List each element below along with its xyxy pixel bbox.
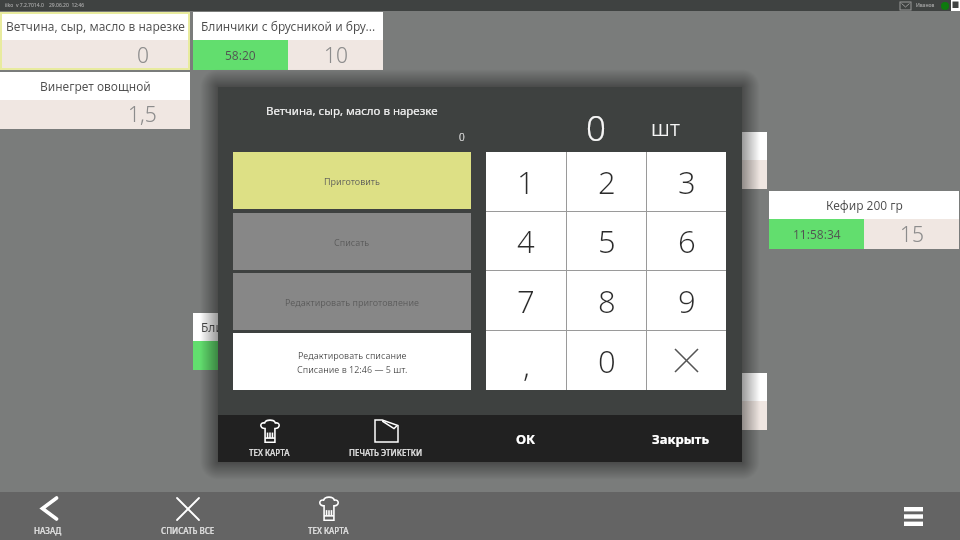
button[interactable]: Редактировать списание (233, 333, 471, 390)
staticText: Блинчики с брусникой и бру... (201, 319, 376, 335)
button[interactable]: СПИСАТЬ ВСЕ (161, 497, 215, 536)
staticText: iiko v 7.2.7014.0 29.06.20 12:46 (5, 2, 85, 9)
button[interactable]: ПЕЧАТЬ ЭТИКЕТКИ (349, 419, 423, 458)
staticText: 7 (517, 280, 535, 322)
button[interactable]: 6 (647, 212, 726, 270)
button[interactable]: 2 (567, 152, 646, 211)
staticText: Иванов (916, 2, 935, 9)
button[interactable]: Закрыть (642, 422, 720, 456)
button[interactable]: Блинчики с брусникой и бру... (193, 12, 383, 70)
button[interactable]: Винегрет овощной (0, 72, 190, 129)
button[interactable]: 4 (486, 212, 566, 270)
button[interactable]: 0 (567, 331, 646, 390)
button[interactable]: ТЕХ КАРТА (308, 496, 349, 536)
button[interactable]: ОК (506, 422, 546, 456)
button[interactable]: Блинчики с брусникой и бру... (193, 313, 383, 370)
staticText: Ветчина, сыр, масло в нарезке (266, 103, 438, 119)
staticText: ПЕЧАТЬ ЭТИКЕТКИ (349, 447, 423, 458)
staticText: 9 (678, 280, 696, 322)
button[interactable]: Стереть (647, 331, 726, 390)
button[interactable]: Меню (893, 496, 933, 536)
staticText: Списание в 12:46 — 5 шт. (297, 363, 408, 375)
button[interactable]: Ветчина, сыр, масло в нарезке (0, 12, 190, 70)
staticText: 58:20 (225, 47, 256, 63)
button[interactable]: 8 (567, 271, 646, 330)
other: Терминал (951, 0, 960, 11)
staticText: ТЕХ КАРТА (308, 525, 349, 536)
staticText: 0 (586, 104, 606, 152)
staticText: 11:58:34 (793, 226, 841, 242)
staticText: , (523, 344, 530, 386)
button[interactable]: Кефир 200 гр (769, 191, 959, 249)
button[interactable]: 3 (647, 152, 726, 211)
staticText: ОК (516, 430, 536, 448)
button[interactable]: 9 (647, 271, 726, 330)
button[interactable]: Назад (34, 496, 62, 536)
staticText: 6 (678, 220, 696, 262)
other: Сообщения (900, 2, 911, 10)
staticText: 8 (598, 280, 616, 322)
staticText: 0 (459, 130, 465, 144)
staticText: 1,5 (128, 100, 157, 129)
button[interactable]: ТЕХ КАРТА (249, 419, 290, 458)
staticText: Приготовить (324, 175, 380, 187)
staticText: Списать (334, 236, 370, 248)
other: Назад (38, 496, 58, 521)
staticText: Редактировать приготовление (285, 296, 419, 308)
button[interactable] (742, 373, 767, 430)
button[interactable] (742, 132, 767, 189)
staticText: 0 (137, 41, 149, 70)
staticText: 2 (598, 161, 616, 203)
staticText: 5 (598, 220, 616, 262)
button[interactable]: Редактировать приготовление (233, 273, 471, 330)
staticText: ТЕХ КАРТА (249, 447, 290, 458)
staticText: Ветчина, сыр, масло в нарезке (6, 18, 185, 34)
staticText: 0 (598, 340, 616, 382)
staticText: 1 (517, 161, 535, 203)
staticText: 15 (900, 220, 924, 249)
staticText: Редактировать списание (298, 349, 407, 361)
button[interactable]: 5 (567, 212, 646, 270)
other: Стереть (675, 349, 698, 372)
staticText: Закрыть (652, 430, 710, 448)
button[interactable]: , (486, 331, 566, 390)
staticText: Кефир 200 гр (826, 197, 903, 213)
staticText: 3 (678, 161, 696, 203)
staticText: шт (651, 112, 680, 142)
button[interactable]: 7 (486, 271, 566, 330)
button[interactable]: Приготовить (233, 152, 471, 209)
button[interactable]: 1 (486, 152, 566, 211)
staticText: НАЗАД (34, 525, 62, 536)
staticText: Блинчики с брусникой и бру... (201, 18, 376, 34)
staticText: Винегрет овощной (40, 78, 151, 94)
staticText: 4 (517, 220, 535, 262)
staticText: СПИСАТЬ ВСЕ (161, 525, 215, 536)
staticText: 10 (324, 41, 348, 70)
